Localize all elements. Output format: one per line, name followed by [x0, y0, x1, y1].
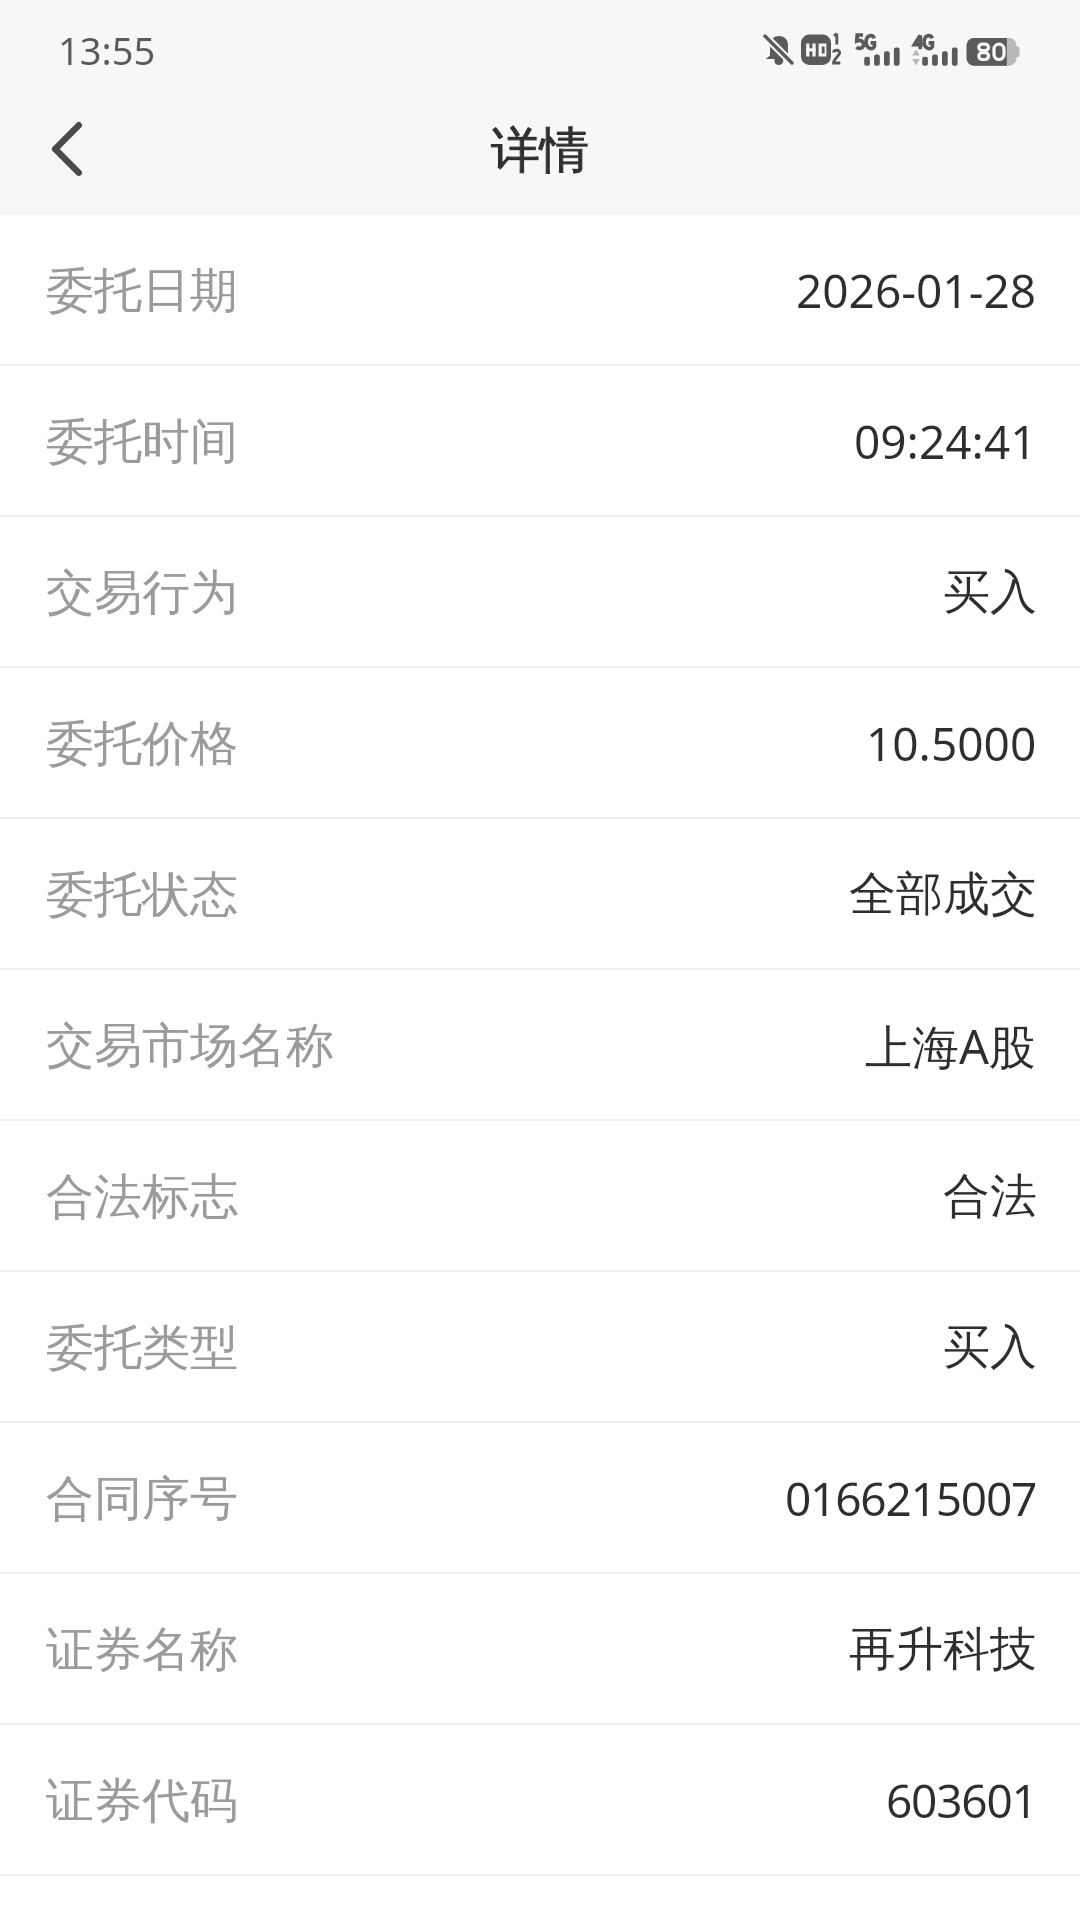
- staticText: 再升科技: [849, 1620, 1037, 1679]
- staticText: 2026-01-28: [796, 259, 1037, 322]
- button[interactable]: Back: [0, 83, 130, 215]
- staticText: 0166215007: [785, 1467, 1037, 1530]
- button[interactable]: 合法标志: [0, 1121, 1080, 1272]
- staticText: 合法: [943, 1167, 1037, 1226]
- staticText: 上海A股: [865, 1014, 1037, 1078]
- staticText: 09:24:41: [854, 410, 1037, 473]
- button[interactable]: 委托日期: [0, 215, 1080, 366]
- staticText: 全部成交: [849, 865, 1037, 924]
- staticText: 证券名称: [46, 1620, 238, 1680]
- staticText: 买入: [943, 563, 1037, 622]
- staticText: 603601: [886, 1769, 1037, 1832]
- button[interactable]: 证券代码: [0, 1725, 1080, 1876]
- staticText: 委托日期: [46, 261, 238, 321]
- staticText: 买入: [943, 1318, 1037, 1377]
- staticText: 委托状态: [46, 865, 238, 925]
- staticText: 委托时间: [46, 412, 238, 472]
- staticText: 详情: [491, 120, 589, 182]
- button[interactable]: 证券名称: [0, 1574, 1080, 1725]
- staticText: 交易市场名称: [46, 1016, 334, 1076]
- button[interactable]: 委托时间: [0, 366, 1080, 517]
- staticText: 详情: [491, 120, 589, 182]
- button[interactable]: 委托状态: [0, 819, 1080, 970]
- staticText: 证券代码: [46, 1771, 238, 1831]
- button[interactable]: 委托类型: [0, 1272, 1080, 1423]
- button[interactable]: 合同序号: [0, 1423, 1080, 1574]
- button[interactable]: 委托价格: [0, 668, 1080, 819]
- staticText: 合法标志: [46, 1167, 238, 1227]
- button[interactable]: 交易行为: [0, 517, 1080, 668]
- staticText: 委托类型: [46, 1318, 238, 1378]
- staticText: 交易行为: [46, 563, 238, 623]
- staticText: 10.5000: [866, 712, 1037, 775]
- button[interactable]: 交易市场名称: [0, 970, 1080, 1121]
- staticText: 合同序号: [46, 1469, 238, 1529]
- staticText: 委托价格: [46, 714, 238, 774]
- staticText: 13:55: [58, 24, 156, 76]
